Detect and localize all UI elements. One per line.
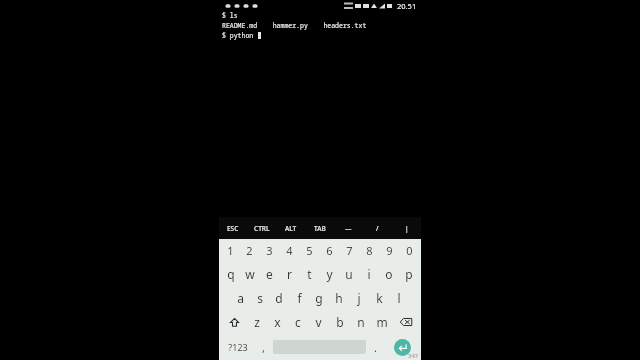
button[interactable]: 0	[399, 239, 419, 262]
staticText: 5	[306, 243, 313, 258]
button[interactable]: j	[349, 286, 369, 310]
staticText: CTRL	[254, 224, 270, 233]
button[interactable]: n	[350, 310, 371, 334]
staticText: 8	[366, 243, 373, 258]
staticText: c	[295, 314, 301, 330]
button[interactable]: ESC	[219, 217, 247, 239]
button[interactable]: 2	[240, 239, 259, 262]
staticText: 20.51	[397, 1, 417, 11]
staticText: ESC	[227, 224, 239, 233]
button[interactable]: —	[334, 217, 363, 239]
button[interactable]: x	[267, 310, 287, 334]
staticText: v	[315, 314, 322, 330]
button[interactable]: 7	[339, 239, 359, 262]
staticText: $ python	[222, 31, 258, 40]
staticText: l	[397, 290, 401, 306]
button[interactable]: /	[363, 217, 392, 239]
staticText: b	[336, 314, 344, 330]
staticText: 3	[266, 243, 273, 258]
button[interactable]: q	[221, 262, 240, 286]
staticText: f	[297, 290, 302, 306]
button[interactable]: ?123	[221, 334, 254, 360]
button[interactable]: Enter	[394, 339, 411, 356]
staticText: d	[275, 290, 283, 306]
button[interactable]: w	[240, 262, 259, 286]
button[interactable]: r	[279, 262, 299, 286]
button[interactable]: l	[389, 286, 409, 310]
staticText: i	[367, 266, 371, 282]
staticText: 347	[408, 352, 419, 360]
staticText: m	[376, 314, 388, 330]
staticText: u	[345, 266, 353, 282]
button[interactable]: |	[392, 217, 421, 239]
button[interactable]: ALT	[276, 217, 305, 239]
staticText: 2	[246, 243, 253, 258]
staticText: r	[287, 266, 292, 282]
staticText: j	[357, 290, 361, 306]
button[interactable]: t	[299, 262, 319, 286]
button[interactable]: 3	[259, 239, 279, 262]
staticText: 9	[386, 243, 393, 258]
staticText: 7	[346, 243, 353, 258]
staticText: h	[335, 290, 343, 306]
staticText: README.md hammer.py headers.txt	[222, 21, 367, 30]
button[interactable]: v	[308, 310, 329, 334]
staticText: x	[274, 314, 281, 330]
staticText: q	[227, 266, 235, 282]
staticText: s	[257, 290, 263, 306]
staticText: p	[405, 266, 413, 282]
button[interactable]: h	[329, 286, 349, 310]
button[interactable]: TAB	[305, 217, 334, 239]
button[interactable]: u	[339, 262, 359, 286]
button[interactable]: 8	[359, 239, 379, 262]
staticText: —	[345, 224, 352, 233]
staticText: n	[357, 314, 365, 330]
staticText: y	[326, 266, 333, 282]
staticText: k	[376, 290, 383, 306]
button[interactable]: 9	[379, 239, 399, 262]
button[interactable]: k	[369, 286, 389, 310]
button[interactable]: f	[289, 286, 309, 310]
button[interactable]: s	[250, 286, 269, 310]
staticText: |	[405, 224, 409, 233]
button[interactable]: m	[371, 310, 392, 334]
button[interactable]: 5	[299, 239, 319, 262]
staticText: .	[374, 340, 377, 355]
staticText: 1	[227, 243, 234, 258]
button[interactable]: d	[269, 286, 289, 310]
staticText: e	[266, 266, 273, 282]
staticText: 0	[406, 243, 413, 258]
staticText: ,	[262, 340, 265, 355]
button[interactable]: i	[359, 262, 379, 286]
button[interactable]: e	[259, 262, 279, 286]
staticText: o	[385, 266, 393, 282]
staticText: w	[245, 266, 255, 282]
staticText: /	[376, 224, 379, 233]
button[interactable]: 4	[279, 239, 299, 262]
button[interactable]: 1	[221, 239, 240, 262]
button[interactable]: .	[366, 334, 385, 360]
button[interactable]: p	[399, 262, 419, 286]
button[interactable]: Shift	[221, 310, 247, 334]
button[interactable]: o	[379, 262, 399, 286]
staticText: 4	[286, 243, 293, 258]
staticText: $ ls	[222, 11, 238, 20]
staticText: TAB	[314, 224, 326, 233]
button[interactable]: c	[287, 310, 308, 334]
button[interactable]: y	[319, 262, 339, 286]
button[interactable]: 6	[319, 239, 339, 262]
button[interactable]: b	[329, 310, 350, 334]
staticText: z	[254, 314, 260, 330]
staticText: t	[307, 266, 312, 282]
button[interactable]: a	[231, 286, 250, 310]
staticText: g	[315, 290, 323, 306]
staticText: ?123	[228, 341, 248, 353]
button[interactable]: z	[247, 310, 267, 334]
staticText: a	[237, 290, 244, 306]
button[interactable]: Backspace	[392, 310, 419, 334]
button[interactable]: g	[309, 286, 329, 310]
staticText: ALT	[285, 224, 297, 233]
button[interactable]: CTRL	[247, 217, 276, 239]
button[interactable]: ,	[254, 334, 273, 360]
